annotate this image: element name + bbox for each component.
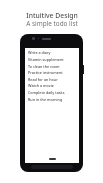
staticText: Vitamin supplement — [28, 57, 64, 62]
button[interactable]: To clean the room — [25, 63, 79, 70]
staticText: Watch a movie — [28, 83, 54, 88]
staticText: To clean the room — [28, 64, 60, 69]
button[interactable]: Run in the morning — [25, 96, 79, 103]
button[interactable]: Complete daily tasks — [25, 89, 79, 96]
button[interactable]: Vitamin supplement — [25, 56, 79, 63]
staticText: Write a diary — [28, 50, 51, 55]
staticText: Practice instrument — [28, 70, 63, 75]
button[interactable]: Read for an hour — [25, 76, 79, 83]
staticText: Complete daily tasks — [28, 90, 65, 95]
staticText: Run in the morning — [28, 97, 63, 102]
button[interactable]: Write a diary — [25, 49, 79, 56]
staticText: Read for an hour — [28, 77, 58, 82]
button[interactable]: Practice instrument — [25, 69, 79, 76]
staticText: A simple todo list — [26, 19, 78, 28]
button[interactable]: Watch a movie — [25, 82, 79, 89]
staticText: Intuitive Design — [26, 11, 78, 20]
